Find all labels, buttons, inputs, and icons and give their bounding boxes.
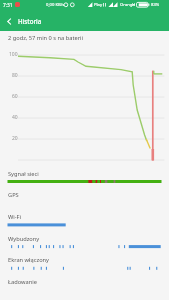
button[interactable]: Ładowanie xyxy=(0,278,169,298)
staticText: Orange xyxy=(120,2,135,8)
staticText: 2 godz, 57 min 0 s na baterii xyxy=(8,34,83,42)
staticText: GPS xyxy=(8,191,19,199)
staticText: Ładowanie xyxy=(8,278,37,286)
staticText: Wi-Fi xyxy=(8,213,22,221)
staticText: 7:31 xyxy=(3,2,13,9)
button[interactable]: GPS xyxy=(0,191,169,211)
staticText: Historia xyxy=(18,17,42,25)
staticText: Sygnał sieci xyxy=(8,170,39,178)
button[interactable]: Ekran włączony xyxy=(0,256,169,276)
staticText: Wybudzony xyxy=(8,235,40,243)
staticText: Play xyxy=(94,2,103,8)
staticText: 80 xyxy=(12,72,18,79)
staticText: 83% xyxy=(151,2,160,8)
staticText: 100 xyxy=(9,51,18,58)
staticText: 40 xyxy=(12,114,18,121)
staticText: 0,00 KB/s xyxy=(46,2,65,8)
staticText: 20 xyxy=(12,135,18,142)
staticText: 60 xyxy=(12,93,18,100)
staticText: Ekran włączony xyxy=(8,256,50,264)
button[interactable]: Wi-Fi xyxy=(0,213,169,233)
button[interactable]: Wstecz xyxy=(0,12,18,30)
button[interactable]: Sygnał sieci xyxy=(0,170,169,190)
button[interactable]: Wybudzony xyxy=(0,235,169,255)
staticText: H xyxy=(132,2,136,8)
